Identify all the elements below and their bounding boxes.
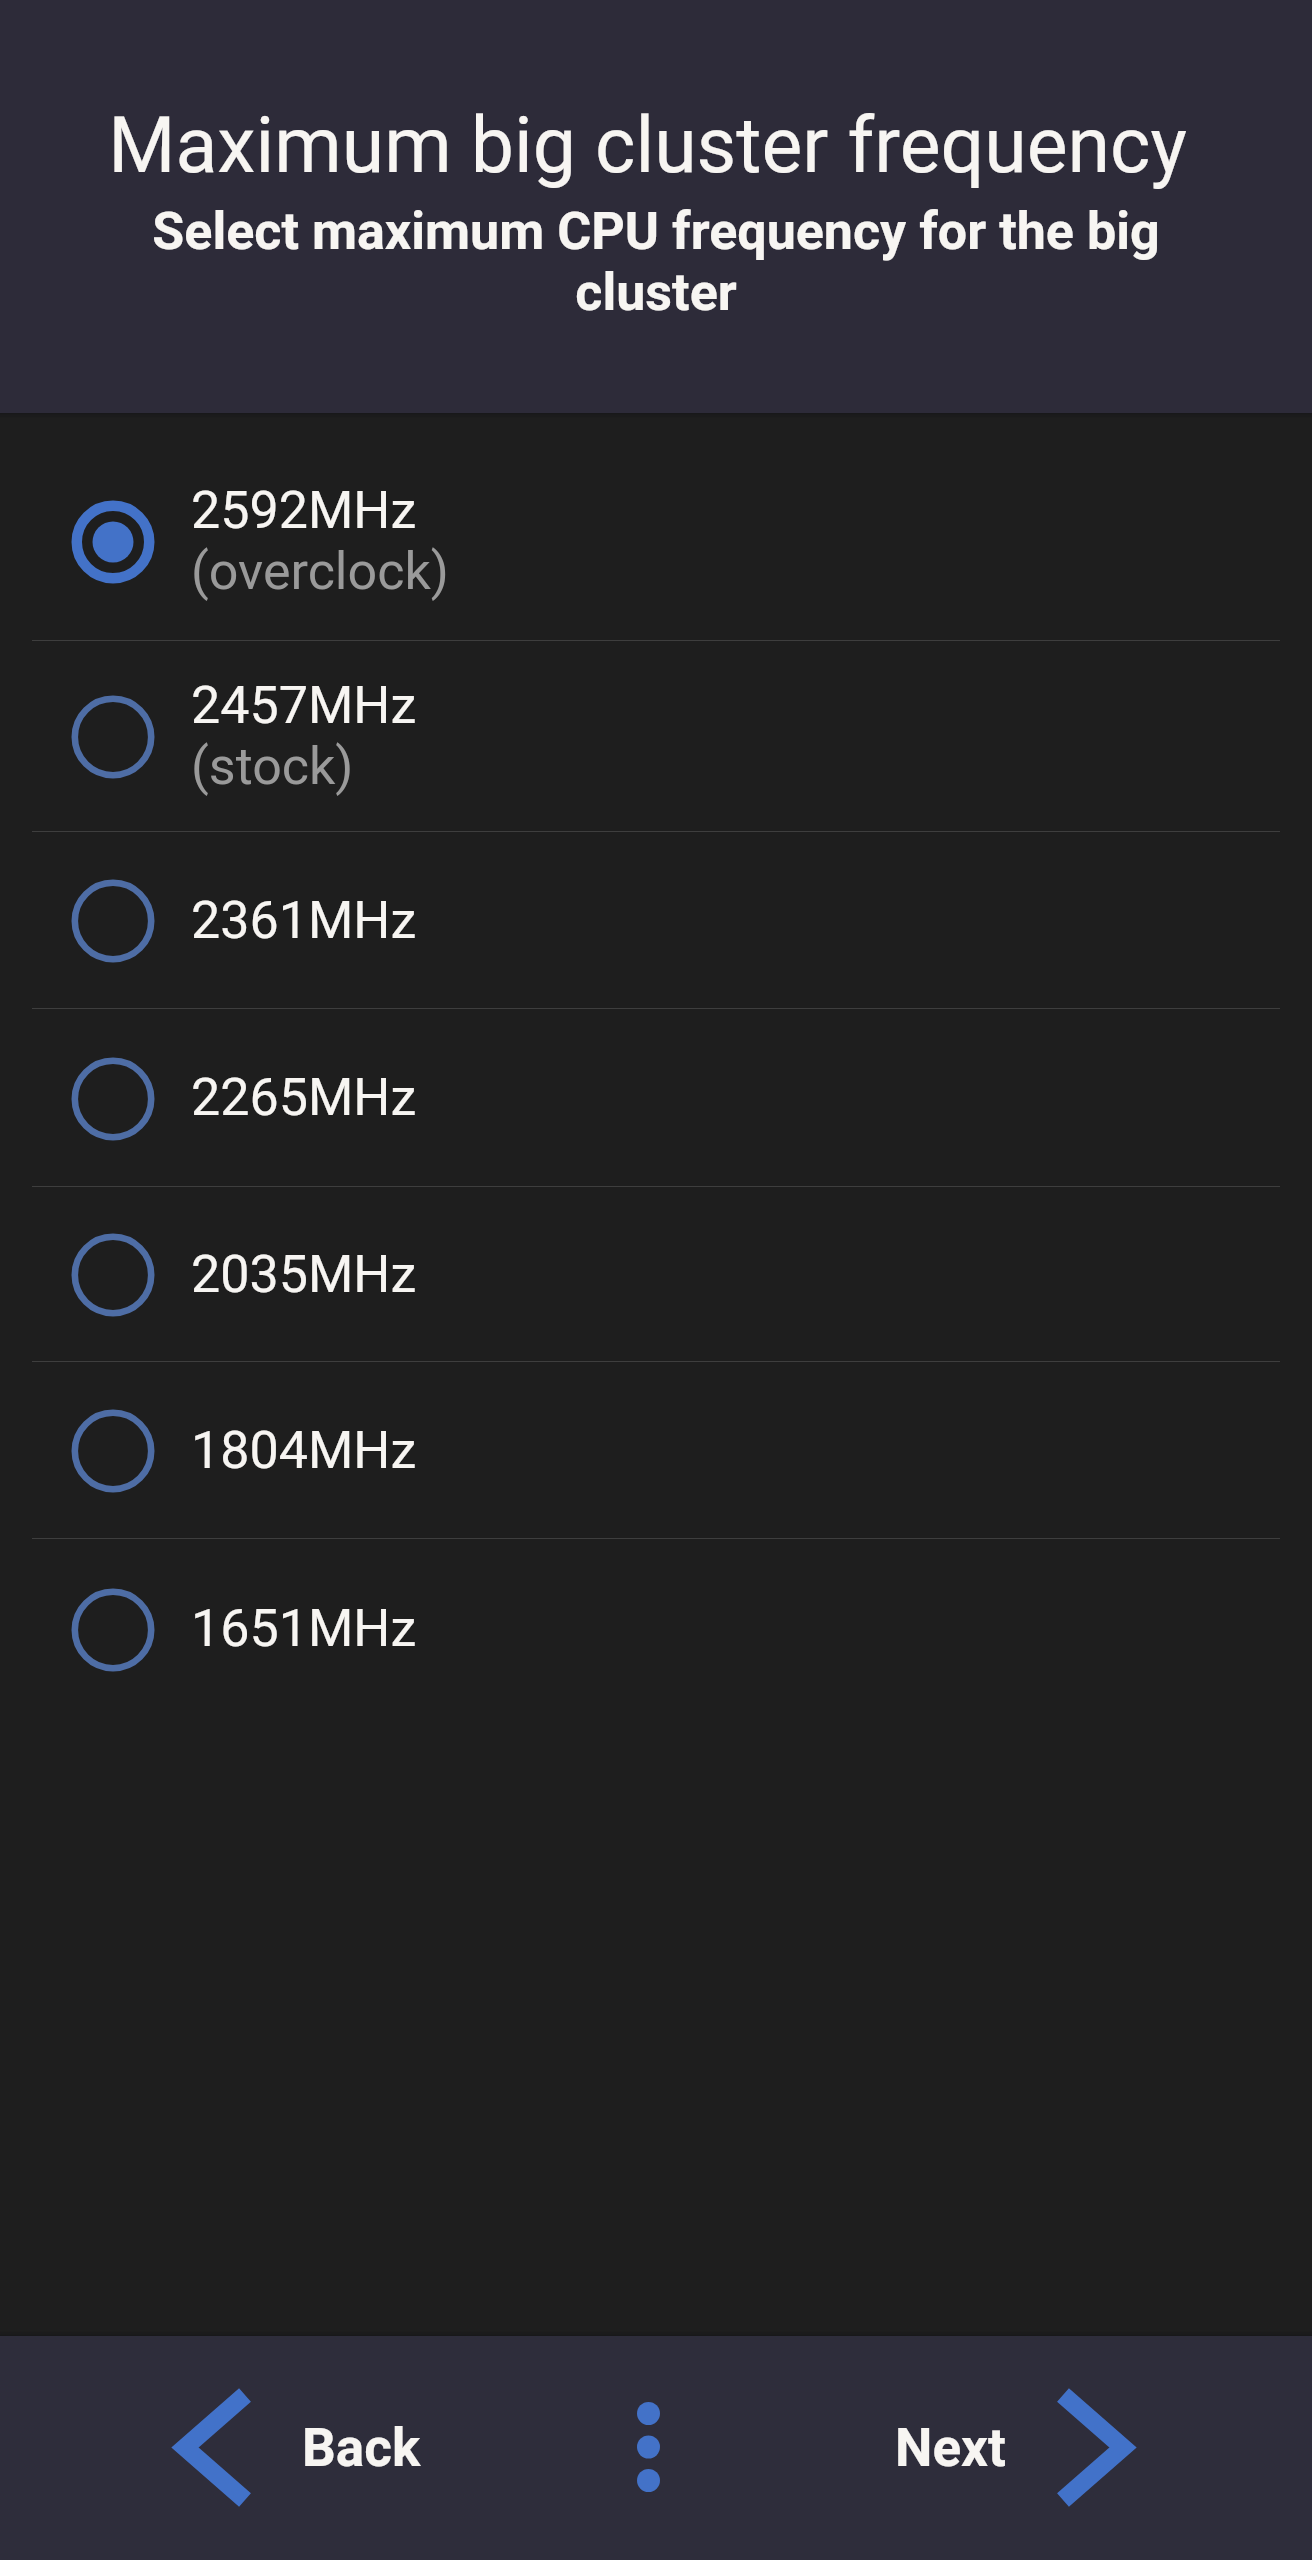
staticText: (overclock) xyxy=(191,541,449,602)
staticText: 1651MHz xyxy=(191,1598,417,1659)
button[interactable]: 2457MHz xyxy=(0,641,1312,831)
button[interactable]: 1651MHz xyxy=(0,1539,1312,1718)
button[interactable]: More options xyxy=(588,2336,708,2560)
button[interactable]: Back xyxy=(0,2336,475,2560)
button[interactable]: Next xyxy=(837,2336,1312,2560)
staticText: Back xyxy=(302,2417,421,2479)
staticText: 2457MHz xyxy=(191,675,417,736)
button[interactable]: 2592MHz xyxy=(0,441,1312,640)
button[interactable]: 2361MHz xyxy=(0,832,1312,1008)
staticText: 2035MHz xyxy=(191,1244,417,1305)
staticText: Next xyxy=(895,2417,1006,2479)
button[interactable]: 2035MHz xyxy=(0,1187,1312,1361)
staticText: Maximum big cluster frequency xyxy=(108,101,1187,191)
button[interactable]: 2265MHz xyxy=(0,1009,1312,1186)
staticText: 2265MHz xyxy=(191,1067,417,1128)
staticText: Select maximum CPU frequency for the big… xyxy=(110,201,1202,323)
staticText: 1804MHz xyxy=(191,1420,417,1481)
button[interactable]: 1804MHz xyxy=(0,1362,1312,1538)
staticText: 2361MHz xyxy=(191,890,417,951)
staticText: 2592MHz xyxy=(191,480,417,541)
staticText: (stock) xyxy=(191,736,354,797)
